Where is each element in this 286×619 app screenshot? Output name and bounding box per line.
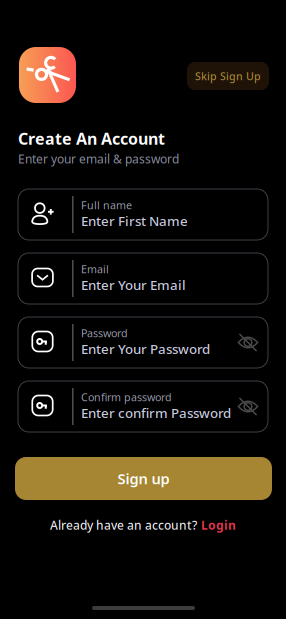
- staticText: Confirm password: [81, 390, 172, 404]
- staticText: Enter Your Email: [81, 276, 186, 294]
- button[interactable]: Confirm password: [18, 381, 268, 432]
- staticText: Create An Account: [18, 128, 165, 149]
- staticText: Password: [81, 326, 128, 340]
- staticText: Full name: [81, 198, 132, 212]
- button[interactable]: Sign up: [15, 457, 272, 500]
- button[interactable]: Skip Sign Up: [187, 62, 269, 90]
- staticText: Login: [201, 517, 236, 533]
- staticText: Skip Sign Up: [195, 69, 261, 83]
- button[interactable]: Email: [18, 253, 268, 304]
- staticText: Sign up: [117, 469, 169, 488]
- staticText: Email: [81, 262, 109, 276]
- button[interactable]: Password: [18, 317, 268, 368]
- button[interactable]: Full name: [18, 189, 268, 240]
- staticText: Enter confirm Password: [81, 404, 231, 422]
- button[interactable]: Login: [201, 517, 236, 533]
- staticText: Enter your email & password: [18, 151, 179, 167]
- staticText: Enter First Name: [81, 212, 188, 230]
- staticText: Already have an account?: [50, 517, 197, 533]
- staticText: Enter Your Password: [81, 340, 210, 358]
